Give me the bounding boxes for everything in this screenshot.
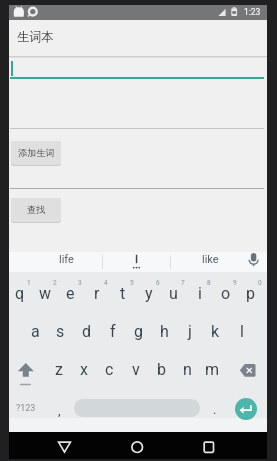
button[interactable]: y (136, 281, 161, 305)
button[interactable]: f (100, 319, 125, 343)
staticText: d (82, 322, 92, 341)
staticText: e (66, 284, 75, 303)
staticText: s (56, 322, 65, 341)
button[interactable]: v (123, 357, 148, 381)
staticText: g (134, 322, 143, 341)
button[interactable]: k (203, 319, 228, 343)
button[interactable]: z (46, 357, 71, 381)
staticText: I (135, 252, 139, 265)
staticText: 7 (181, 279, 185, 287)
button[interactable]: c (97, 357, 122, 381)
button[interactable]: u (161, 281, 186, 305)
button[interactable]: life (36, 247, 96, 271)
button[interactable]: a (23, 319, 48, 343)
staticText: w (39, 284, 52, 303)
button[interactable]: l (229, 319, 254, 343)
button[interactable] (10, 108, 264, 129)
button[interactable]: , (52, 401, 66, 419)
button[interactable]: 添加生词 (11, 141, 61, 165)
button[interactable]: j (177, 319, 202, 343)
staticText: life (59, 253, 74, 266)
button[interactable]: s (48, 319, 73, 343)
staticText: 查找 (27, 204, 46, 216)
staticText: 3 (78, 279, 82, 287)
staticText: 生词本 (17, 29, 54, 44)
button[interactable]: r (84, 281, 109, 305)
button[interactable]: g (126, 319, 151, 343)
staticText: , (58, 403, 61, 418)
button[interactable]: like (180, 247, 240, 271)
button[interactable]: n (175, 357, 200, 381)
button[interactable] (235, 398, 257, 420)
staticText: c (105, 360, 114, 379)
button[interactable]: t (110, 281, 135, 305)
staticText: f (110, 322, 116, 341)
button[interactable]: e (58, 281, 83, 305)
staticText: 添加生词 (18, 147, 55, 159)
button[interactable] (10, 168, 264, 189)
staticText: 2 (53, 279, 57, 287)
staticText: q (15, 284, 25, 303)
button[interactable] (10, 58, 264, 79)
button[interactable]: 查找 (11, 198, 61, 222)
staticText: n (183, 360, 192, 379)
staticText: o (221, 284, 231, 303)
staticText: a (31, 322, 40, 341)
staticText: j (188, 322, 192, 341)
staticText: l (240, 322, 244, 341)
staticText: 1 (27, 279, 31, 287)
staticText: 4 (104, 279, 108, 287)
staticText: y (145, 284, 153, 303)
staticText: k (211, 322, 220, 341)
staticText: 0 (258, 279, 262, 287)
button[interactable]: h (152, 319, 177, 343)
button[interactable]: d (74, 319, 99, 343)
button[interactable]: o (213, 281, 238, 305)
staticText: 6 (156, 279, 160, 287)
staticText: ?123 (16, 403, 36, 414)
button[interactable]: ?123 (11, 400, 41, 416)
staticText: x (80, 360, 88, 379)
staticText: p (246, 284, 255, 303)
button[interactable]: b (149, 357, 174, 381)
staticText: h (160, 322, 169, 341)
button[interactable] (74, 399, 200, 417)
button[interactable]: I (107, 246, 167, 270)
staticText: 9 (233, 279, 237, 287)
button[interactable]: i (187, 281, 212, 305)
staticText: z (55, 360, 63, 379)
staticText: r (94, 284, 100, 303)
button[interactable]: . (208, 400, 222, 418)
button[interactable]: m (200, 357, 225, 381)
staticText: t (120, 284, 126, 303)
staticText: v (132, 360, 140, 379)
staticText: like (202, 253, 219, 266)
staticText: m (205, 360, 220, 379)
staticText: u (169, 284, 178, 303)
button[interactable]: p (238, 281, 263, 305)
staticText: i (198, 284, 202, 303)
staticText: b (157, 360, 166, 379)
button[interactable]: x (71, 357, 96, 381)
staticText: . (213, 402, 217, 417)
staticText: 5 (130, 279, 134, 287)
staticText: 1:23 (244, 7, 261, 17)
button[interactable]: q (7, 281, 32, 305)
button[interactable]: w (33, 281, 58, 305)
staticText: 8 (207, 279, 211, 287)
